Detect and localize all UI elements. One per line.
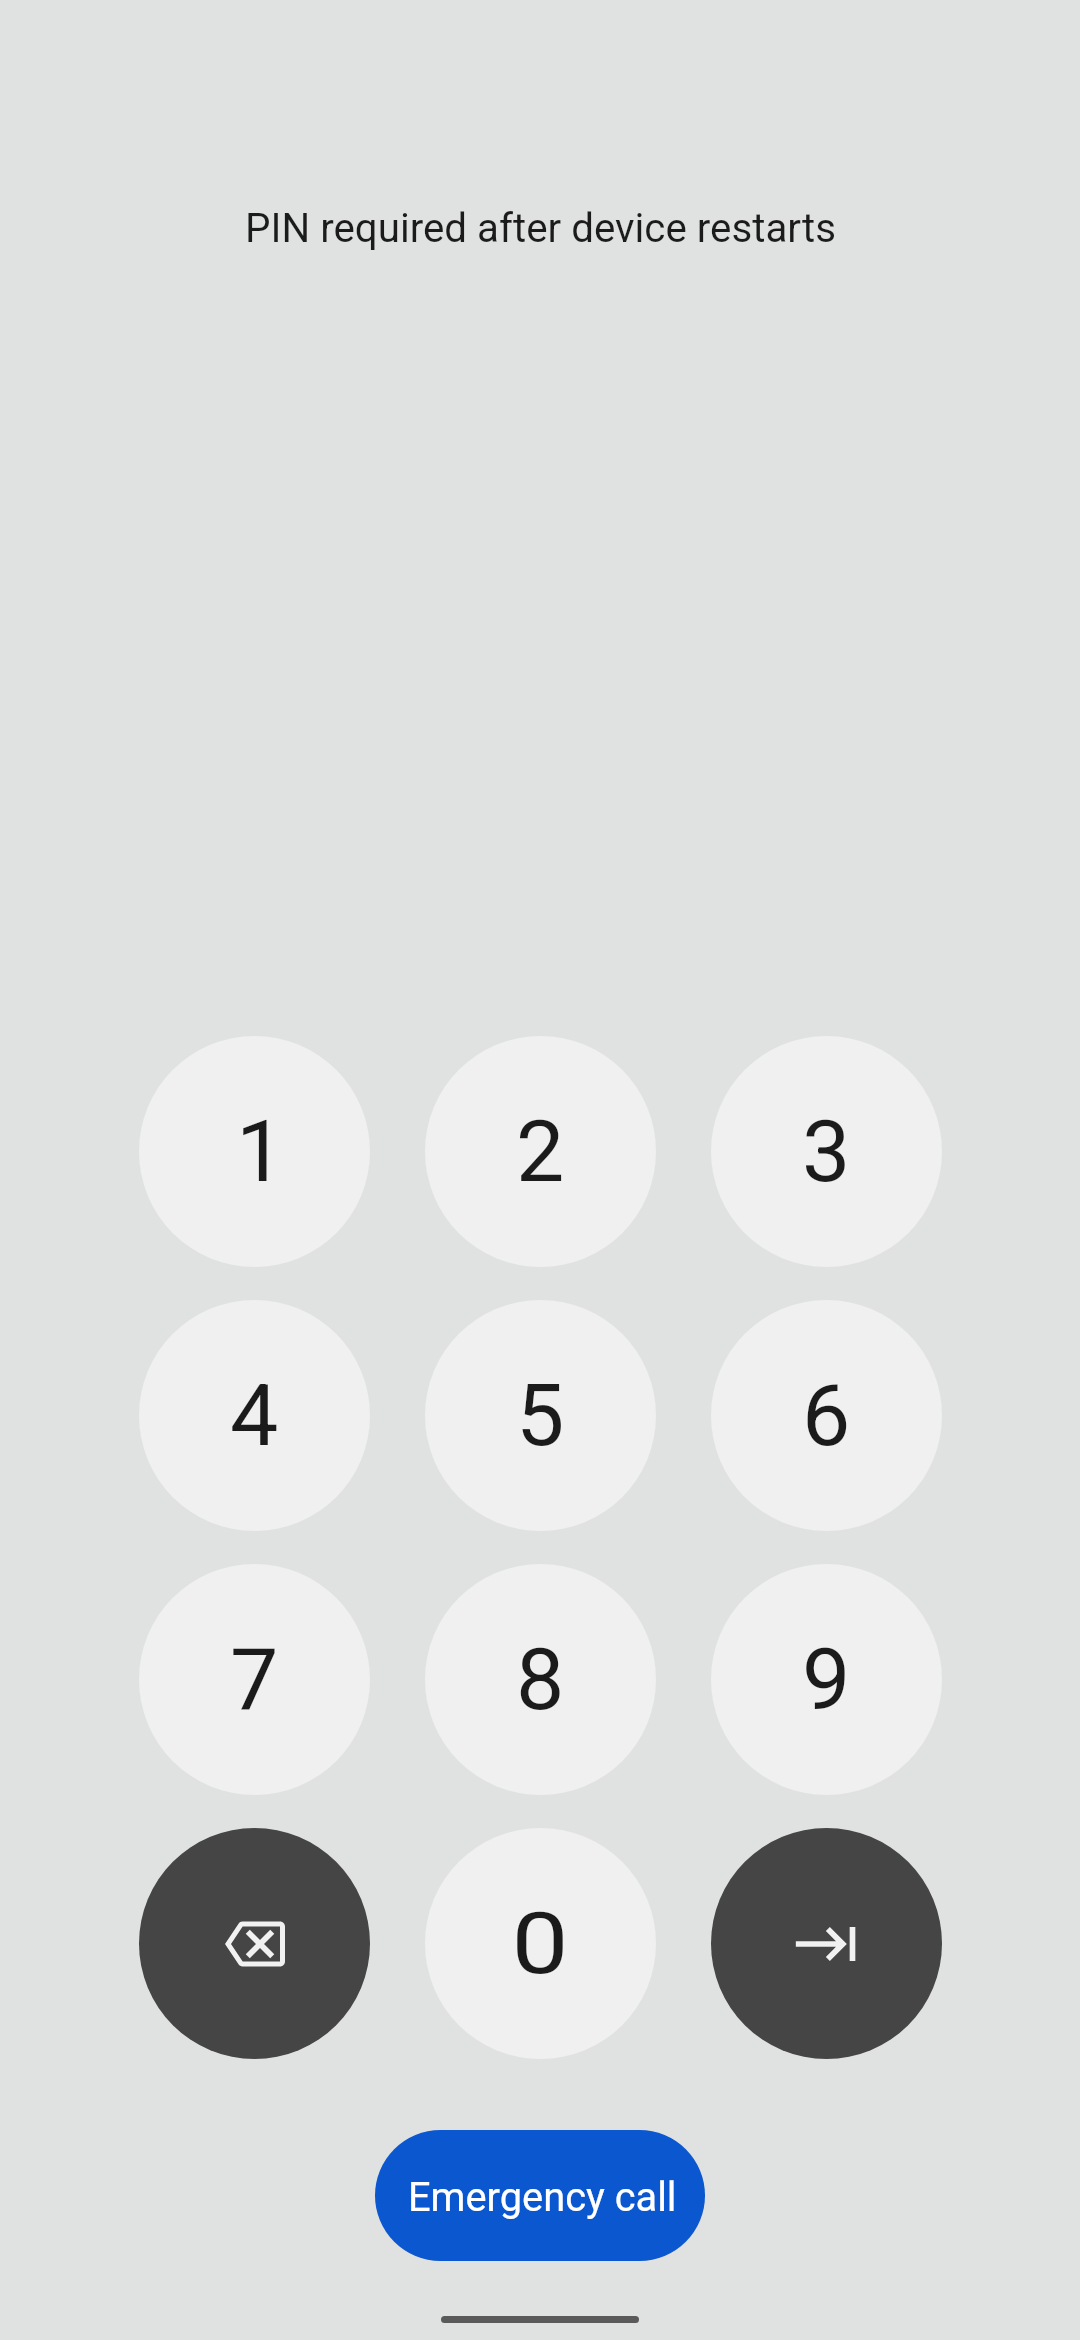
button[interactable]: 8 [425, 1564, 656, 1795]
staticText: 5 [516, 1365, 565, 1466]
staticText: 8 [516, 1629, 565, 1730]
button[interactable]: 4 [139, 1300, 370, 1531]
staticText: Emergency call [408, 2174, 677, 2221]
button[interactable]: Enter PIN [711, 1828, 942, 2059]
staticText: 7 [230, 1629, 279, 1730]
button[interactable]: 2 [425, 1036, 656, 1267]
button[interactable]: 0 [425, 1828, 656, 2059]
staticText: 4 [230, 1365, 279, 1466]
button[interactable]: 9 [711, 1564, 942, 1795]
staticText: 1 [236, 1101, 285, 1202]
button[interactable]: 1 [139, 1036, 370, 1267]
staticText: 6 [802, 1365, 851, 1466]
staticText: 3 [802, 1101, 851, 1202]
staticText: 9 [802, 1629, 851, 1730]
button[interactable]: Delete [139, 1828, 370, 2059]
staticText: PIN required after device restarts [245, 205, 836, 252]
button[interactable]: 5 [425, 1300, 656, 1531]
button[interactable]: 6 [711, 1300, 942, 1531]
staticText: 0 [512, 1893, 569, 1994]
button[interactable]: Emergency call [375, 2130, 705, 2261]
staticText: 2 [516, 1101, 565, 1202]
button[interactable]: 3 [711, 1036, 942, 1267]
button[interactable]: 7 [139, 1564, 370, 1795]
